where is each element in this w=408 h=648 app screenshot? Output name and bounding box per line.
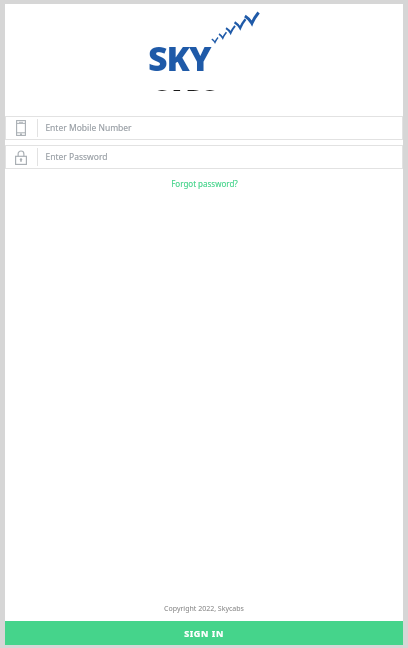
staticText: CABS — [152, 81, 216, 91]
button[interactable]: Forgot password? — [5, 175, 403, 192]
button[interactable]: Password — [5, 145, 403, 169]
staticText: Forgot password? — [171, 178, 238, 189]
other: Password — [5, 145, 37, 169]
staticText: Enter Password — [45, 151, 108, 163]
staticText: Enter Mobile Number — [45, 122, 132, 134]
button[interactable]: SIGN IN — [5, 621, 403, 645]
staticText: SIGN IN — [184, 627, 224, 639]
other: Mobile number — [5, 116, 37, 140]
button[interactable]: Mobile number — [5, 116, 403, 140]
staticText: SKY — [148, 35, 211, 81]
staticText: Copyright 2022, Skycabs — [164, 604, 244, 614]
